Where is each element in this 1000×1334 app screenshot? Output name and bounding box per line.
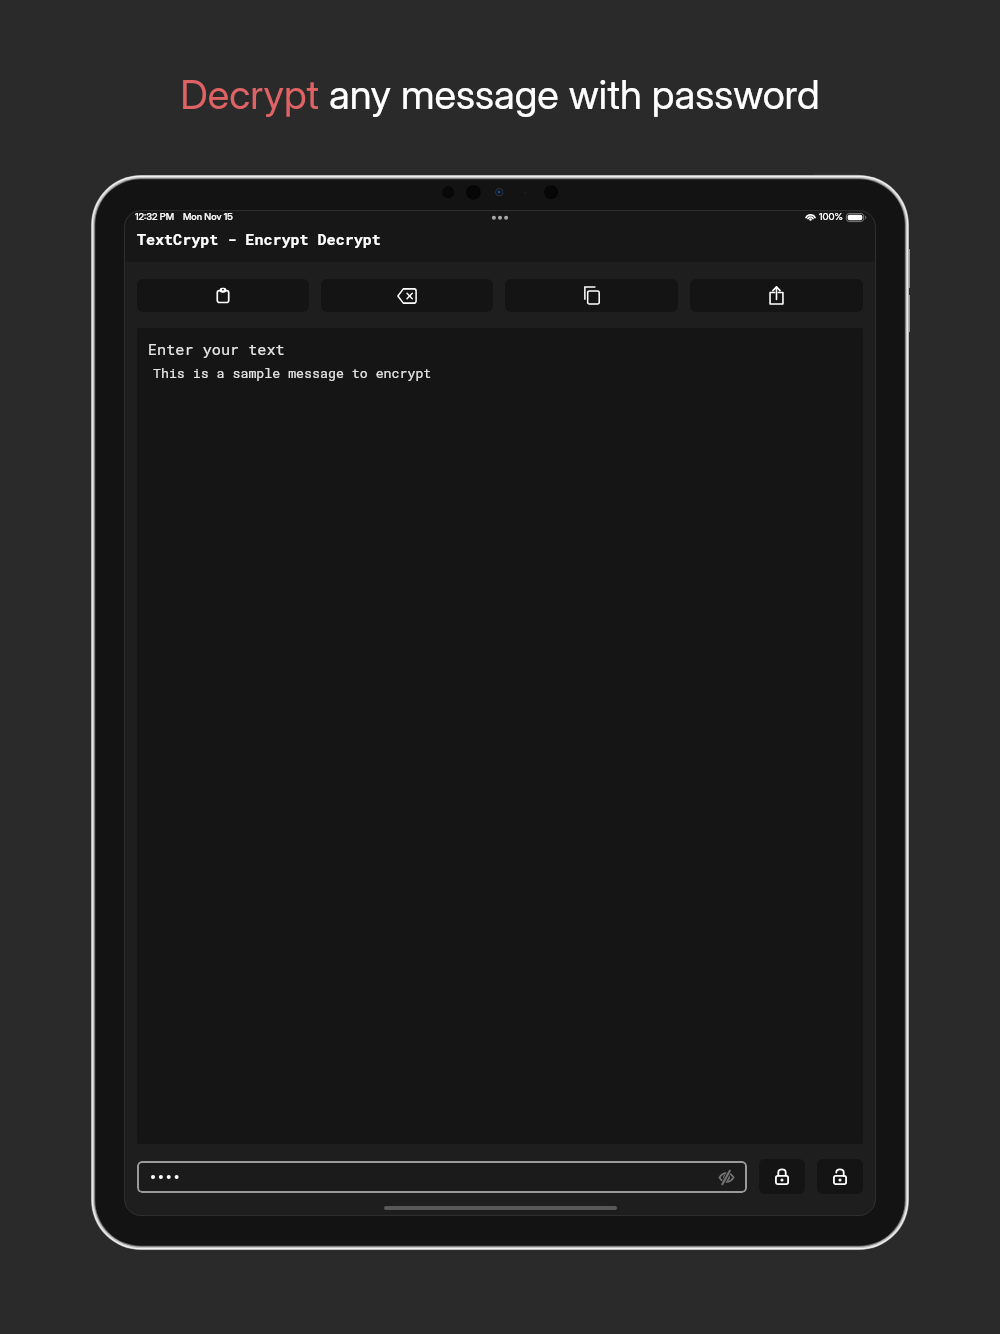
button[interactable]: Show password bbox=[137, 1161, 747, 1193]
button[interactable]: Backspace bbox=[321, 279, 493, 312]
button[interactable]: Share bbox=[690, 279, 863, 312]
button[interactable]: Show password bbox=[715, 1166, 737, 1188]
button[interactable]: Paste bbox=[137, 279, 309, 312]
staticText: This is a sample message to encrypt bbox=[153, 364, 432, 381]
staticText: TextCrypt - Encrypt Decrypt bbox=[137, 229, 381, 249]
staticText: Mon Nov 15 bbox=[183, 211, 233, 223]
button[interactable]: Copy bbox=[505, 279, 678, 312]
staticText: 12:32 PM bbox=[135, 211, 175, 223]
staticText: Decrypt any message with password bbox=[0, 70, 1000, 118]
staticText: Enter your text bbox=[148, 339, 285, 359]
staticText: 100% bbox=[819, 211, 843, 223]
button[interactable]: Encrypt bbox=[759, 1159, 805, 1194]
button[interactable]: Decrypt bbox=[817, 1159, 863, 1194]
